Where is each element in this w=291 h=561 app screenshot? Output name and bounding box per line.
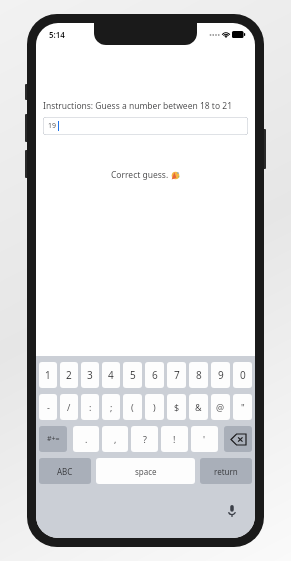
button[interactable]: (	[123, 394, 142, 420]
staticText: 5:14	[49, 29, 65, 40]
button[interactable]: space	[96, 458, 195, 484]
button[interactable]: !	[161, 426, 188, 452]
button[interactable]: '	[191, 426, 218, 452]
staticText: $	[174, 401, 180, 413]
staticText: )	[153, 401, 156, 413]
button[interactable]: 9	[211, 362, 230, 388]
staticText: return	[214, 466, 238, 477]
staticText: '	[203, 433, 206, 445]
button[interactable]: .	[73, 426, 99, 452]
staticText: 3	[87, 368, 93, 382]
button[interactable]: ?	[131, 426, 158, 452]
button[interactable]: ;	[102, 394, 120, 420]
button[interactable]: $	[167, 394, 186, 420]
button[interactable]: 1	[39, 362, 57, 388]
button[interactable]: 7	[167, 362, 186, 388]
staticText: :	[89, 401, 92, 413]
staticText: 19	[48, 121, 57, 131]
button[interactable]: Dictation	[222, 501, 242, 521]
button[interactable]: &	[189, 394, 208, 420]
staticText: /	[67, 401, 71, 413]
button[interactable]: 3	[81, 362, 99, 388]
staticText: -	[47, 401, 50, 413]
staticText: 0	[240, 368, 246, 382]
button[interactable]: -	[39, 394, 57, 420]
staticText: 6	[152, 368, 158, 382]
staticText: 2	[66, 368, 72, 382]
staticText: 4	[108, 368, 114, 382]
staticText: @	[216, 401, 225, 413]
button[interactable]: ABC	[39, 458, 91, 484]
staticText: 9	[218, 368, 224, 382]
button[interactable]: 2	[60, 362, 78, 388]
staticText: 1	[45, 368, 51, 382]
staticText: space	[135, 466, 157, 477]
staticText: (	[131, 401, 134, 413]
button[interactable]: /	[60, 394, 78, 420]
staticText: ABC	[57, 466, 73, 477]
staticText: Correct guess.	[111, 169, 171, 181]
button[interactable]: #+=	[39, 426, 67, 452]
button[interactable]: Backspace	[224, 426, 252, 452]
button[interactable]: 0	[233, 362, 252, 388]
staticText: !	[173, 433, 176, 445]
staticText: &	[195, 401, 202, 413]
button[interactable]: 19	[43, 117, 248, 135]
button[interactable]: ,	[102, 426, 128, 452]
staticText: ;	[110, 401, 113, 413]
staticText: "	[241, 401, 245, 413]
staticText: #+=	[47, 434, 60, 444]
button[interactable]: 4	[102, 362, 120, 388]
button[interactable]: 6	[145, 362, 164, 388]
button[interactable]: :	[81, 394, 99, 420]
staticText: Instructions: Guess a number between 18 …	[43, 100, 232, 112]
staticText: ,	[114, 433, 117, 445]
staticText: 8	[196, 368, 202, 382]
staticText: .	[85, 433, 88, 445]
staticText: ?	[143, 433, 147, 445]
staticText: 5	[130, 368, 136, 382]
button[interactable]: 5	[123, 362, 142, 388]
button[interactable]: "	[233, 394, 252, 420]
staticText: 7	[174, 368, 180, 382]
button[interactable]: return	[200, 458, 252, 484]
button[interactable]: )	[145, 394, 164, 420]
button[interactable]: 8	[189, 362, 208, 388]
button[interactable]: @	[211, 394, 230, 420]
